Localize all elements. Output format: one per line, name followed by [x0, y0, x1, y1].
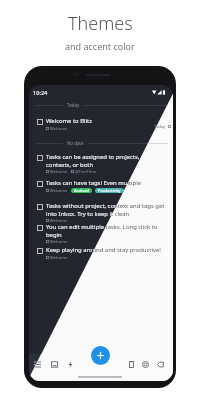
staticText: Tasks can be assigned to projects, conte… [46, 153, 140, 168]
button[interactable]: Projects [124, 357, 138, 371]
staticText: 10:24 [33, 89, 48, 97]
button[interactable]: Add task [91, 346, 110, 365]
button[interactable]: Quick add [63, 357, 77, 371]
button[interactable]: Tags [153, 357, 167, 371]
staticText: You can edit multiple tasks. Long click … [46, 223, 158, 238]
button[interactable]: Welcome to Blitz [29, 117, 173, 131]
staticText: @FreeTime [75, 169, 97, 174]
button[interactable]: Tasks can be assigned to projects, conte… [29, 153, 173, 174]
button[interactable]: Tasks without project, context and tags … [29, 202, 173, 223]
staticText: Welcome [50, 188, 68, 193]
staticText: Today [67, 102, 80, 108]
staticText: Android [74, 188, 89, 193]
staticText: Welcome [50, 218, 68, 223]
staticText: No date [67, 140, 84, 146]
staticText: Keep playing around and stay productive! [46, 246, 161, 254]
button[interactable]: Contexts [138, 357, 152, 371]
staticText: @FreeTime [75, 169, 97, 174]
staticText: No date [67, 140, 84, 146]
button[interactable]: Add task [91, 346, 110, 365]
staticText: Welcome [50, 188, 68, 193]
staticText: Tasks can be assigned to projects, conte… [46, 153, 140, 168]
staticText: Welcome [50, 126, 68, 131]
button[interactable]: Keep playing around and stay productive! [29, 246, 173, 260]
staticText: Today [67, 102, 80, 108]
button[interactable]: Welcome to Blitz [29, 117, 173, 131]
button[interactable]: Tasks can have tags! Even multiple [29, 179, 173, 193]
staticText: Welcome [50, 218, 68, 223]
staticText: You can edit multiple tasks. Long click … [46, 223, 158, 238]
button[interactable]: Inbox [47, 357, 61, 371]
staticText: Welcome to Blitz [46, 117, 92, 125]
button[interactable]: Menu [30, 357, 44, 371]
staticText: Tasks can have tags! Even multiple [46, 179, 142, 187]
staticText: Productivity [98, 188, 121, 193]
button[interactable]: Contexts [138, 357, 152, 371]
button[interactable]: Inbox [47, 357, 61, 371]
staticText: Productivity [98, 188, 121, 193]
staticText: and accent color [65, 40, 135, 52]
staticText: Tasks without project, context and tags … [46, 202, 165, 217]
button[interactable]: Tasks without project, context and tags … [29, 202, 173, 223]
staticText: Welcome [50, 169, 68, 174]
staticText: Tasks can have tags! Even multiple [46, 179, 142, 187]
staticText: Today [154, 124, 166, 129]
button[interactable]: Menu [30, 357, 44, 371]
button[interactable]: Quick add [63, 357, 77, 371]
staticText: Welcome [50, 169, 68, 174]
staticText: Android [74, 188, 89, 193]
staticText: Welcome to Blitz [46, 117, 92, 125]
staticText: Today [154, 124, 166, 129]
button[interactable]: You can edit multiple tasks. Long click … [29, 223, 173, 244]
staticText: Welcome [50, 239, 68, 244]
staticText: Keep playing around and stay productive! [46, 246, 161, 254]
button[interactable]: You can edit multiple tasks. Long click … [29, 223, 173, 244]
button[interactable]: Tags [153, 357, 167, 371]
staticText: 10:24 [33, 89, 48, 97]
button[interactable]: Keep playing around and stay productive! [29, 246, 173, 260]
staticText: Themes [68, 11, 133, 36]
button[interactable]: Projects [124, 357, 138, 371]
staticText: Tasks without project, context and tags … [46, 202, 165, 217]
button[interactable]: Tasks can be assigned to projects, conte… [29, 153, 173, 174]
button[interactable]: Tasks can have tags! Even multiple [29, 179, 173, 193]
staticText: Welcome [50, 126, 68, 131]
staticText: Welcome [50, 255, 68, 260]
staticText: Welcome [50, 239, 68, 244]
staticText: Welcome [50, 255, 68, 260]
